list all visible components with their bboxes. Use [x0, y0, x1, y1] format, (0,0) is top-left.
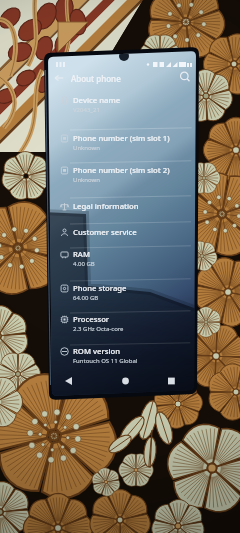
staticText: 64.00 GB [73, 294, 99, 302]
button[interactable]: Phone number (sim slot 1) [55, 133, 195, 155]
staticText: Phone number (sim slot 2) [73, 165, 170, 175]
button[interactable]: RAM [55, 249, 195, 271]
button[interactable]: Phone number (sim slot 2) [55, 165, 195, 187]
button[interactable]: Device name [55, 95, 195, 117]
staticText: About phone [71, 73, 121, 84]
staticText: Device name [73, 95, 121, 105]
staticText: Phone storage [73, 283, 127, 293]
staticText: RAM [73, 249, 90, 259]
staticText: Unknown [73, 176, 100, 184]
staticText: V2043_21 [73, 106, 100, 114]
button[interactable]: Back [54, 71, 194, 85]
staticText: Funtouch OS 11 Global [73, 357, 138, 365]
button[interactable]: Search [178, 70, 192, 84]
staticText: Phone number (sim slot 1) [73, 133, 170, 143]
staticText: Processor [73, 314, 110, 324]
button[interactable]: ROM version [55, 346, 195, 368]
staticText: ROM version [73, 346, 120, 356]
other: Back [54, 73, 64, 83]
staticText: Unknown [73, 144, 100, 152]
button[interactable]: Processor [55, 314, 195, 336]
staticText: 4.00 GB [73, 260, 95, 268]
staticText: 2.3 GHz Octa-core [73, 325, 124, 333]
button[interactable]: Phone storage [55, 283, 195, 305]
button[interactable]: Customer service [55, 227, 195, 245]
staticText: Legal information [73, 201, 139, 211]
button[interactable]: Legal information [55, 201, 195, 219]
staticText: Customer service [73, 227, 137, 237]
